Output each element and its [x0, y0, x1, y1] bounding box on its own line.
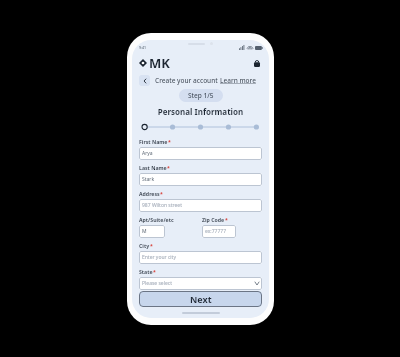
- button[interactable]: ex:77777: [202, 225, 236, 238]
- staticText: M: [142, 228, 147, 235]
- staticText: Step 1/5: [188, 91, 214, 100]
- staticText: Next: [190, 293, 212, 305]
- staticText: 9:41: [139, 45, 146, 50]
- button[interactable]: Arya: [139, 147, 262, 160]
- staticText: 987 Wilton street: [142, 202, 182, 209]
- button[interactable]: Secure: [252, 58, 262, 68]
- button[interactable]: Step 1/5: [179, 89, 223, 102]
- staticText: Create your account: [155, 76, 220, 85]
- button[interactable]: Please select: [139, 277, 262, 290]
- staticText: Arya: [142, 150, 153, 157]
- staticText: *: [160, 190, 163, 197]
- button[interactable]: Next: [139, 291, 262, 307]
- button[interactable]: 987 Wilton street: [139, 199, 262, 212]
- staticText: City: [139, 242, 150, 249]
- staticText: State: [139, 268, 153, 275]
- staticText: MK: [149, 54, 170, 72]
- staticText: Apt/Suite/etc: [139, 216, 174, 223]
- staticText: *: [150, 242, 153, 249]
- staticText: *: [168, 138, 171, 145]
- button[interactable]: Enter your city: [139, 251, 262, 264]
- button[interactable]: Back: [139, 75, 150, 86]
- staticText: Address: [139, 190, 160, 197]
- button[interactable]: Learn more: [220, 76, 256, 85]
- staticText: Zip Code: [202, 216, 225, 223]
- staticText: First Name: [139, 138, 168, 145]
- button[interactable]: Stark: [139, 173, 262, 186]
- staticText: Enter your city: [142, 254, 176, 261]
- staticText: Please select: [142, 280, 172, 287]
- staticText: Stark: [142, 176, 155, 183]
- staticText: Last Name: [139, 164, 167, 171]
- staticText: *: [167, 164, 170, 171]
- staticText: *: [153, 268, 156, 275]
- button[interactable]: M: [139, 225, 165, 238]
- staticText: Personal Information: [132, 106, 269, 117]
- staticText: *: [225, 216, 228, 223]
- staticText: ex:77777: [205, 228, 227, 235]
